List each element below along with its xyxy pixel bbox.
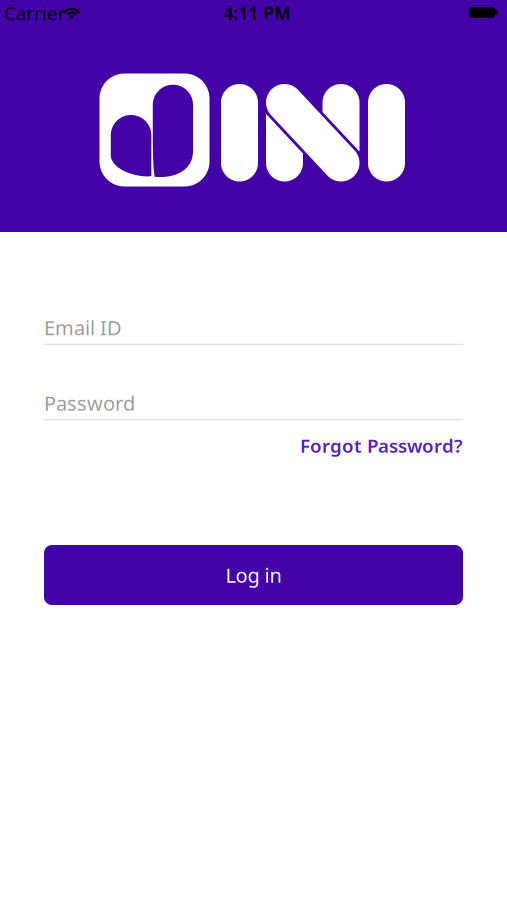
staticText: Log in bbox=[225, 562, 281, 588]
staticText: Password bbox=[44, 390, 135, 416]
button[interactable]: Log in bbox=[44, 545, 463, 605]
button[interactable]: Email ID bbox=[44, 314, 463, 345]
staticText: Forgot Password? bbox=[300, 433, 463, 458]
staticText: 4:11 PM bbox=[223, 1, 290, 24]
staticText: Email ID bbox=[44, 314, 122, 341]
staticText: Carrier bbox=[4, 1, 66, 25]
button[interactable]: Forgot Password? bbox=[44, 433, 463, 458]
button[interactable]: Password bbox=[44, 390, 463, 420]
